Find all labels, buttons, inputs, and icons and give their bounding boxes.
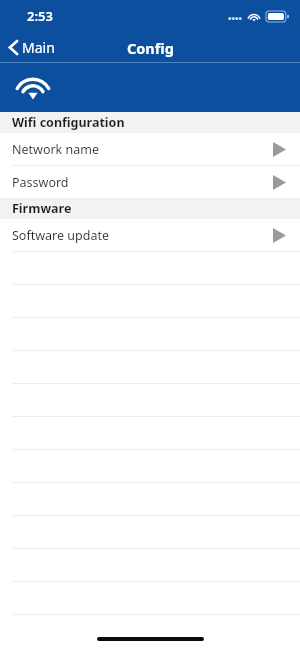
staticText: Config bbox=[127, 38, 174, 58]
staticText: Password bbox=[12, 174, 69, 191]
button[interactable]: Main bbox=[0, 32, 67, 63]
staticText: Main bbox=[22, 38, 55, 57]
button[interactable]: Software update bbox=[0, 219, 300, 251]
staticText: Wifi configuration bbox=[12, 114, 125, 131]
staticText: 2:53 bbox=[27, 7, 53, 25]
staticText: Software update bbox=[12, 227, 109, 244]
button[interactable]: Network name bbox=[0, 133, 300, 165]
staticText: Firmware bbox=[12, 200, 72, 217]
other: Wi-Fi bbox=[13, 74, 53, 101]
button[interactable]: Password bbox=[0, 166, 300, 198]
staticText: Network name bbox=[12, 141, 100, 158]
